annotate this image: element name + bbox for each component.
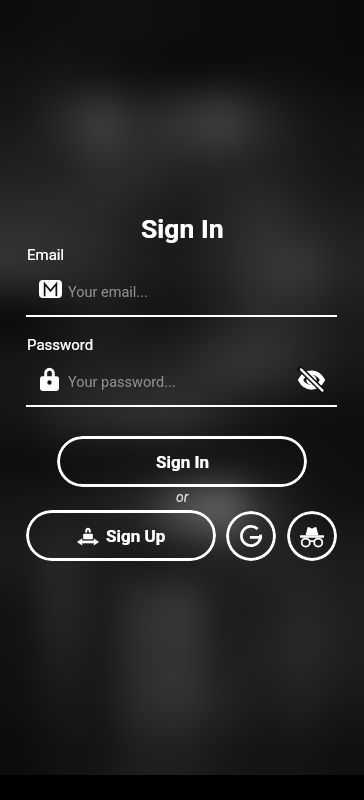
staticText: or xyxy=(176,489,189,505)
staticText: Sign In xyxy=(141,213,224,244)
button[interactable]: Sign In xyxy=(57,436,307,487)
staticText: Your password... xyxy=(68,374,176,391)
button[interactable]: Continue as guest xyxy=(287,511,337,561)
staticText: Sign In xyxy=(156,452,209,472)
button[interactable]: Sign in with Google xyxy=(226,511,276,561)
staticText: Your email... xyxy=(68,284,148,301)
button[interactable]: Sign Up xyxy=(26,510,216,561)
staticText: Sign Up xyxy=(106,526,166,546)
staticText: Password xyxy=(27,336,94,354)
staticText: Email xyxy=(27,246,65,264)
button[interactable]: Show password xyxy=(299,369,324,391)
